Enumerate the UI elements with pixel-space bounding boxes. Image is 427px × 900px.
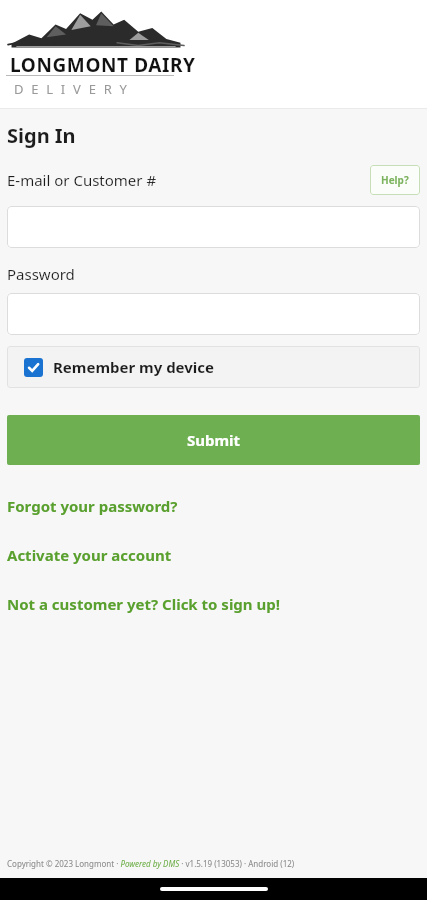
staticText: Activate your account — [7, 545, 172, 565]
button[interactable]: Remember my device — [7, 346, 420, 388]
staticText: Copyright © 2023 Longmont · Powered by D… — [7, 858, 295, 869]
staticText: Help? — [381, 173, 409, 187]
button[interactable]: Submit — [7, 415, 420, 465]
button[interactable]: Forgot your password? — [7, 496, 420, 516]
button[interactable] — [7, 206, 420, 248]
button[interactable]: Help? — [370, 165, 420, 195]
button[interactable]: Not a customer yet? Click to sign up! — [7, 594, 420, 614]
staticText: Password — [7, 264, 75, 284]
staticText: Submit — [187, 430, 241, 450]
staticText: Remember my device — [53, 357, 215, 377]
staticText: LONGMONT DAIRY — [10, 52, 196, 78]
staticText: Forgot your password? — [7, 496, 178, 516]
button[interactable] — [7, 293, 420, 335]
button[interactable]: Activate your account — [7, 545, 420, 565]
staticText: E-mail or Customer # — [7, 170, 370, 190]
staticText: Not a customer yet? Click to sign up! — [7, 594, 280, 614]
staticText: D E L I V E R Y — [14, 80, 130, 98]
staticText: Sign In — [7, 122, 76, 149]
